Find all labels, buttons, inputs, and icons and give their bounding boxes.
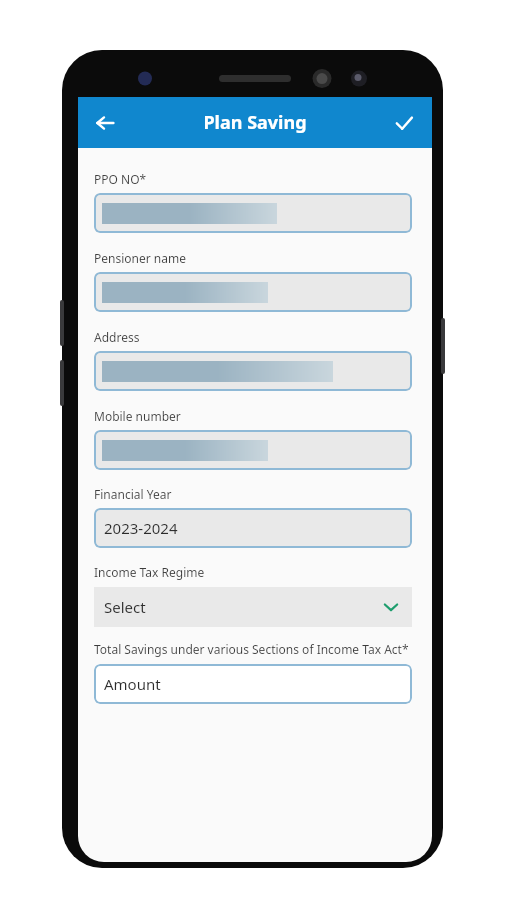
staticText: Pensioner name: [94, 250, 186, 266]
button[interactable]: [94, 193, 412, 233]
button[interactable]: Back: [84, 102, 126, 144]
staticText: Amount: [104, 674, 161, 694]
staticText: Plan Saving: [203, 110, 307, 135]
staticText: Financial Year: [94, 486, 172, 502]
button[interactable]: Select: [94, 587, 412, 627]
staticText: Address: [94, 329, 140, 345]
button[interactable]: 2023-2024: [94, 508, 412, 548]
staticText: Mobile number: [94, 408, 181, 424]
button[interactable]: [94, 272, 412, 312]
button[interactable]: [94, 430, 412, 470]
staticText: Total Savings under various Sections of …: [94, 641, 409, 657]
button[interactable]: Amount: [94, 664, 412, 704]
staticText: PPO NO*: [94, 171, 147, 187]
button[interactable]: Save: [384, 103, 424, 143]
button[interactable]: [94, 351, 412, 391]
staticText: Income Tax Regime: [94, 564, 205, 580]
staticText: Select: [104, 597, 146, 617]
staticText: 2023-2024: [104, 518, 178, 538]
